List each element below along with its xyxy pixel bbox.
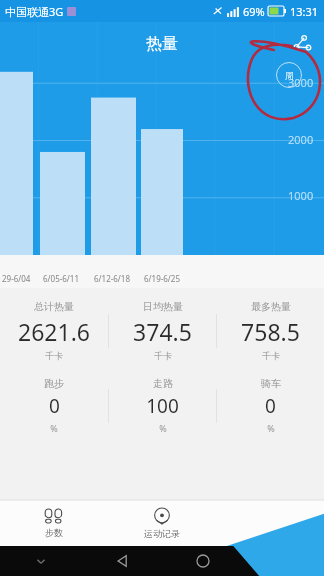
staticText: 总计热量 [34,300,74,313]
staticText: 374.5 [133,316,192,347]
button[interactable]: 骑车 [217,377,324,434]
staticText: 千卡 [262,350,280,361]
staticText: 0 [49,393,60,419]
button[interactable]: 走路 [109,377,216,434]
staticText: 走路 [153,377,173,390]
staticText: 69% [243,4,265,19]
staticText: % [50,422,58,434]
staticText: 758.5 [241,316,300,347]
button[interactable]: 最多热量 [217,300,324,361]
staticText: 6/05-6/11 [43,273,79,284]
staticText: 步数 [45,527,63,538]
staticText: 13:31 [290,4,319,19]
staticText: % [159,422,167,434]
button[interactable]: 运动记录 [108,500,216,546]
button[interactable]: Switch chart mode [276,62,302,88]
staticText: 热量 [146,34,178,54]
staticText: 2000 [288,132,314,147]
staticText: 1000 [288,188,314,203]
staticText: 29-6/04 [2,273,31,284]
staticText: 日均热量 [143,300,183,313]
staticText: 2621.6 [18,316,90,347]
staticText: 3000 [288,75,314,90]
staticText: 100 [146,393,179,419]
staticText: % [267,422,275,434]
staticText: 千卡 [154,350,172,361]
button[interactable]: 步数 [0,500,108,546]
staticText: 骑车 [261,377,281,390]
button[interactable]: Hide keyboard [0,546,81,576]
staticText: 6/12-6/18 [94,273,130,284]
staticText: 最多热量 [251,300,291,313]
staticText: 中国联通3G [5,4,64,19]
button[interactable]: Home [162,546,243,576]
staticText: 跑步 [44,377,64,390]
staticText: 6/19-6/25 [144,273,180,284]
staticText: 0 [265,393,276,419]
button[interactable]: 日均热量 [109,300,216,361]
staticText: 周 [285,70,294,81]
staticText: 千卡 [45,350,63,361]
button[interactable]: 总计热量 [0,300,108,361]
button[interactable]: 跑步 [0,377,108,434]
staticText: 运动记录 [144,528,180,539]
button[interactable]: Share [286,28,318,60]
button[interactable]: Back [81,546,162,576]
button[interactable]: More [216,500,324,546]
